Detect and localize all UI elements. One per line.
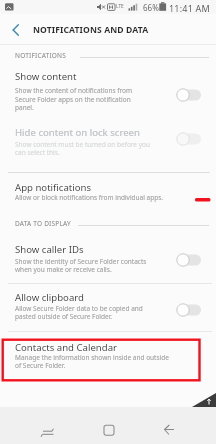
staticText: LTE xyxy=(116,3,124,10)
staticText: NOTIFICATIONS xyxy=(15,51,67,60)
staticText: Show the content of notifications from S… xyxy=(15,86,133,112)
staticText: DATA TO DISPLAY xyxy=(15,219,71,228)
button[interactable]: Show content xyxy=(0,66,216,114)
staticText: Allow clipboard xyxy=(15,291,84,304)
button[interactable]: Allow clipboard xyxy=(0,288,216,325)
staticText: Show content xyxy=(15,70,77,83)
staticText: NOTIFICATIONS AND DATA xyxy=(33,24,149,36)
staticText: Hide content on lock screen xyxy=(15,126,140,139)
staticText: Contacts and Calendar xyxy=(15,341,118,354)
button[interactable]: Contacts and Calendar xyxy=(0,335,216,385)
button[interactable]: Show caller IDs xyxy=(0,240,216,278)
staticText: Manage the information shown inside and … xyxy=(15,353,169,370)
staticText: Show the identity of Secure Folder conta… xyxy=(15,257,147,274)
staticText: Allow Secure Folder data to be copied an… xyxy=(15,304,143,321)
staticText: Show content must be turned on before yo… xyxy=(15,140,150,157)
button[interactable]: App notifications xyxy=(0,178,216,207)
button[interactable] xyxy=(96,419,120,439)
staticText: Show caller IDs xyxy=(15,243,84,256)
button[interactable] xyxy=(36,419,60,439)
button[interactable]: Hide content on lock screen xyxy=(0,122,216,160)
button[interactable] xyxy=(4,18,28,42)
staticText: App notifications xyxy=(15,181,92,194)
staticText: 11:41 AM xyxy=(169,2,210,14)
button[interactable] xyxy=(155,419,179,439)
staticText: 66% xyxy=(143,2,159,13)
staticText: Allow or block notifications from indivi… xyxy=(15,193,164,202)
